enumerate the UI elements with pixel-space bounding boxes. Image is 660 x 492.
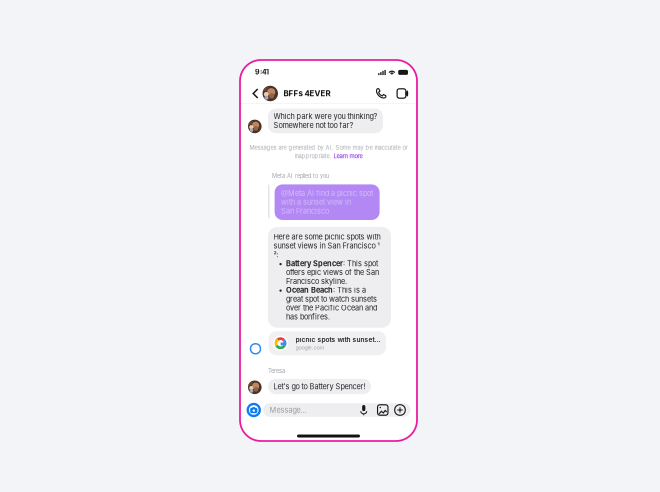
button[interactable]: Audio call: [371, 84, 391, 103]
staticText: Ocean Beach: [286, 286, 333, 295]
staticText: Somewhere not too far?: [273, 121, 353, 130]
staticText: sunset views in San Francisco ¹: [273, 241, 379, 250]
staticText: Francisco skyline.: [286, 277, 347, 286]
staticText: Battery Spencer: [286, 259, 343, 268]
staticText: BFFs 4EVER: [283, 89, 330, 98]
staticText: with a sunset view in: [281, 198, 351, 207]
button[interactable]: picnic spots with sunset...: [268, 331, 386, 355]
staticText: •: [278, 286, 282, 295]
staticText: Meta AI replied to you: [272, 173, 329, 179]
staticText: picnic spots with sunset...: [295, 336, 380, 344]
button[interactable]: More options: [392, 403, 408, 417]
button[interactable]: Camera: [246, 403, 261, 417]
staticText: : This spot: [343, 259, 378, 268]
button[interactable]: BFFs 4EVER: [262, 86, 334, 101]
staticText: has bonfires.: [286, 312, 330, 321]
staticText: over the Pacific Ocean and: [286, 303, 377, 312]
button[interactable]: Video call: [391, 84, 412, 103]
staticText: 9:41: [255, 68, 269, 76]
button[interactable]: Photo library: [373, 403, 392, 417]
staticText: great spot to watch sunsets: [286, 295, 377, 303]
staticText: : This is a: [333, 286, 366, 295]
staticText: inappropriate.: [294, 153, 333, 160]
button[interactable]: Back: [248, 84, 262, 103]
button[interactable]: Voice message: [354, 403, 373, 417]
staticText: Messages are generated by AI. Some may b…: [249, 144, 407, 151]
staticText: Let's go to Battery Spencer!: [273, 382, 365, 391]
staticText: Which park were you thinking?: [273, 112, 377, 121]
button[interactable]: Learn more: [333, 153, 362, 160]
staticText: Here are some picnic spots with: [273, 232, 380, 241]
staticText: •: [278, 259, 282, 268]
staticText: Message...: [269, 406, 306, 414]
staticText: ²:: [273, 250, 278, 259]
staticText: @Meta AI find a picnic spot: [281, 189, 373, 198]
staticText: offers epic views of the San: [286, 268, 379, 277]
staticText: Teresa: [268, 367, 285, 374]
staticText: google.com: [295, 344, 324, 351]
staticText: Learn more: [333, 153, 362, 160]
staticText: San Francisco: [281, 207, 329, 215]
